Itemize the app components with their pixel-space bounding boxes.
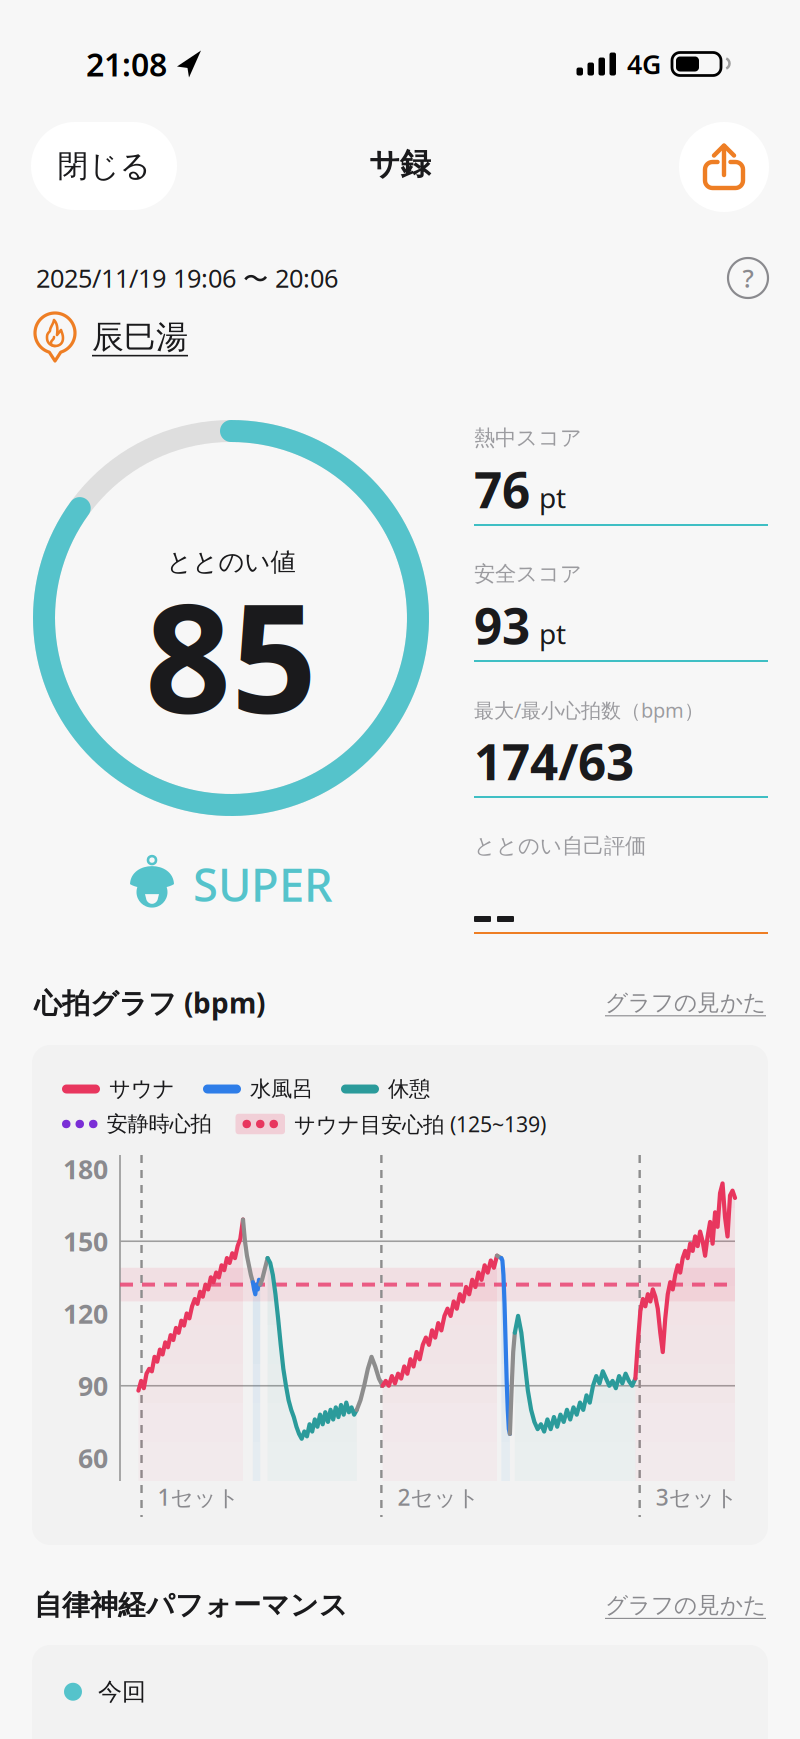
staticText: 熱中スコア (474, 425, 582, 451)
staticText: 安全スコア (474, 561, 582, 587)
staticText: ととのい自己評価 (474, 833, 646, 859)
staticText: サウナ目安心拍 (125~139) (294, 1110, 546, 1138)
staticText: 180 (63, 1151, 108, 1187)
button[interactable]: グラフの見かた (605, 1591, 766, 1619)
staticText: 85 (145, 554, 317, 754)
staticText: 2セット (397, 1482, 479, 1512)
staticText: 最大/最小心拍数（bpm） (474, 697, 704, 723)
staticText: 閉じる (57, 147, 150, 185)
staticText: 水風呂 (250, 1076, 313, 1102)
staticText: ? (742, 261, 753, 295)
staticText: pt (539, 479, 566, 516)
staticText: SUPER (193, 854, 333, 914)
staticText: pt (539, 615, 566, 652)
staticText: 60 (78, 1440, 108, 1476)
staticText: 4G (627, 46, 661, 82)
staticText: 150 (63, 1223, 108, 1259)
staticText: 自律神経パフォーマンス (34, 1588, 348, 1622)
button[interactable]: 辰巳湯 (92, 317, 188, 357)
staticText: ととのい値 (166, 546, 295, 577)
staticText: 90 (78, 1368, 108, 1403)
staticText: 今回 (98, 1677, 146, 1706)
staticText: 3セット (656, 1482, 738, 1512)
staticText: 76 (474, 456, 530, 522)
staticText: サウナ (109, 1076, 175, 1102)
staticText: 1セット (157, 1482, 239, 1512)
staticText: グラフの見かた (605, 989, 766, 1016)
staticText: 2025/11/19 19:06 〜 20:06 (36, 261, 338, 295)
staticText: 辰巳湯 (92, 317, 188, 357)
staticText: 安静時心拍 (106, 1111, 211, 1137)
staticText: 120 (63, 1296, 108, 1331)
button[interactable]: 閉じる (31, 122, 177, 210)
staticText: 21:08 (86, 43, 167, 85)
staticText: 休憩 (388, 1076, 430, 1102)
staticText: 174/63 (474, 728, 634, 794)
staticText: サ録 (369, 145, 431, 183)
button[interactable]: ヘルプ (728, 258, 768, 298)
button[interactable]: 共有 (679, 122, 769, 212)
button[interactable]: グラフの見かた (605, 989, 766, 1016)
staticText: 心拍グラフ (bpm) (34, 984, 265, 1021)
staticText: グラフの見かた (605, 1591, 766, 1619)
staticText: 93 (474, 592, 530, 658)
